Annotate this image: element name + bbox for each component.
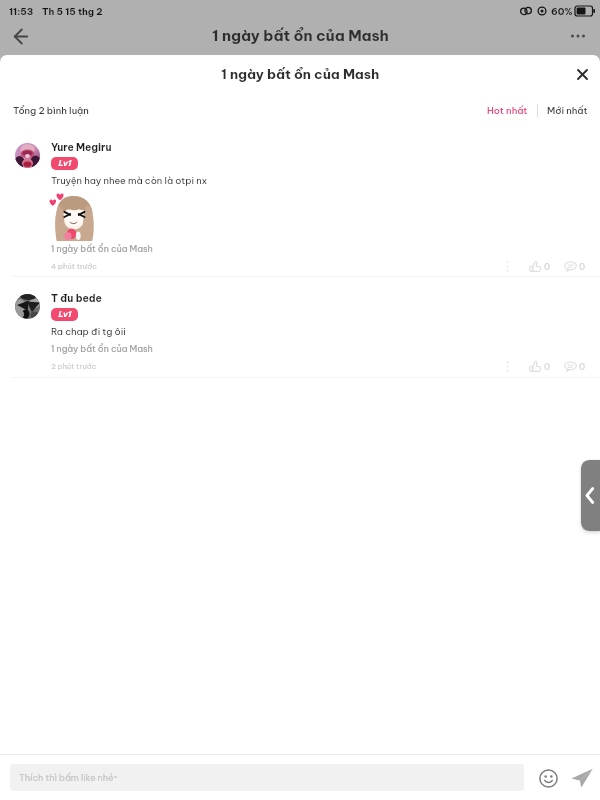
staticText: 0 — [544, 361, 551, 372]
button[interactable]: Back — [6, 21, 36, 51]
button[interactable]: More options — [564, 22, 592, 50]
staticText: 1 ngày bất ổn của Mash — [51, 343, 153, 354]
button[interactable]: Thích thì bấm like nhé~ — [10, 764, 524, 791]
staticText: Thích thì bấm like nhé~ — [19, 772, 118, 783]
button[interactable]: Like — [529, 360, 551, 373]
staticText: 0 — [579, 361, 586, 372]
staticText: Tổng 2 bình luận — [13, 104, 89, 116]
staticText: Truyện hay nhee mà còn là otpi nx — [51, 174, 207, 186]
button[interactable]: Mới nhất — [543, 100, 592, 120]
staticText: Yure Megiru — [51, 141, 112, 154]
staticText: Lv1 — [58, 309, 71, 319]
button[interactable]: Reply — [564, 360, 586, 373]
staticText: Hot nhất — [487, 104, 528, 116]
button[interactable]: Open side panel — [581, 460, 600, 531]
button[interactable]: Emoji — [535, 765, 561, 791]
staticText: 1 ngày bất ổn của Mash — [221, 65, 380, 82]
button[interactable]: Yure Megiru — [0, 141, 600, 277]
staticText: Lv1 — [58, 158, 71, 168]
button[interactable]: T đu bede — [0, 292, 600, 378]
button[interactable]: Send — [568, 764, 596, 792]
button[interactable]: Close — [569, 61, 595, 87]
staticText: Th 5 15 thg 2 — [42, 5, 103, 17]
staticText: T đu bede — [51, 292, 102, 305]
staticText: 0 — [544, 261, 551, 272]
staticText: 60% — [551, 5, 573, 17]
staticText: 1 ngày bất ổn của Mash — [212, 26, 389, 45]
button[interactable]: More — [499, 358, 515, 374]
button[interactable]: Like — [529, 260, 551, 273]
staticText: 1 ngày bất ổn của Mash — [51, 243, 153, 254]
staticText: Ra chap đi tg ôii — [51, 325, 126, 337]
button[interactable]: More — [499, 258, 515, 274]
button[interactable]: Reply — [564, 260, 586, 273]
button[interactable]: Hot nhất — [483, 100, 532, 120]
staticText: Mới nhất — [547, 104, 588, 116]
staticText: 4 phút trước — [51, 261, 97, 270]
staticText: 2 phút trước — [51, 361, 97, 370]
staticText: 0 — [579, 261, 586, 272]
staticText: 11:53 — [9, 5, 34, 17]
